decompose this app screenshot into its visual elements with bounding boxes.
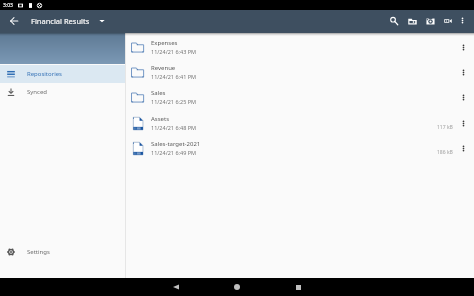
staticText: 11/24/21 6:49 PM <box>151 149 197 156</box>
button[interactable]: More options for Revenue <box>455 64 471 80</box>
staticText: Synced <box>27 88 48 96</box>
staticText: 186 kB <box>437 149 453 156</box>
button[interactable]: Settings <box>0 243 126 261</box>
staticText: Sales-target-2021 <box>151 140 201 148</box>
staticText: 3:03 <box>3 2 13 9</box>
button[interactable]: More options for Expenses <box>455 39 471 55</box>
button[interactable]: Take photo <box>421 12 439 30</box>
button[interactable]: Synced <box>0 83 126 101</box>
staticText: Assets <box>151 115 170 123</box>
staticText: Repositories <box>27 70 62 78</box>
button[interactable]: Assets <box>126 110 474 135</box>
button[interactable]: Repositories <box>0 65 126 83</box>
button[interactable]: Sales <box>126 84 474 109</box>
staticText: Sales <box>151 89 166 97</box>
button[interactable]: Home <box>228 278 246 296</box>
staticText: Revenue <box>151 64 176 72</box>
staticText: 11/24/21 6:25 PM <box>151 98 197 105</box>
button[interactable]: Recent apps <box>289 278 307 296</box>
button[interactable]: New folder <box>403 12 421 30</box>
button[interactable]: More options for Assets <box>455 115 471 131</box>
staticText: 11/24/21 6:43 PM <box>151 48 197 55</box>
button[interactable]: Record video <box>439 12 457 30</box>
staticText: 117 kB <box>437 124 453 131</box>
staticText: Expenses <box>151 39 178 47</box>
button[interactable]: More options for Sales-target-2021 <box>455 140 471 156</box>
button[interactable]: Expenses <box>126 34 474 59</box>
button[interactable]: Sales-target-2021 <box>126 135 474 160</box>
button[interactable]: Revenue <box>126 59 474 84</box>
staticText: Settings <box>27 248 50 256</box>
staticText: 11/24/21 6:41 PM <box>151 73 197 80</box>
staticText: 11/24/21 6:48 PM <box>151 124 197 131</box>
button[interactable]: Back <box>167 278 185 296</box>
button[interactable]: Show menu <box>95 14 109 28</box>
button[interactable]: More options <box>457 15 468 26</box>
button[interactable]: Search <box>385 12 403 30</box>
button[interactable]: More options for Sales <box>455 89 471 105</box>
button[interactable]: Navigate up <box>4 11 24 31</box>
staticText: Financial Results <box>31 16 90 26</box>
